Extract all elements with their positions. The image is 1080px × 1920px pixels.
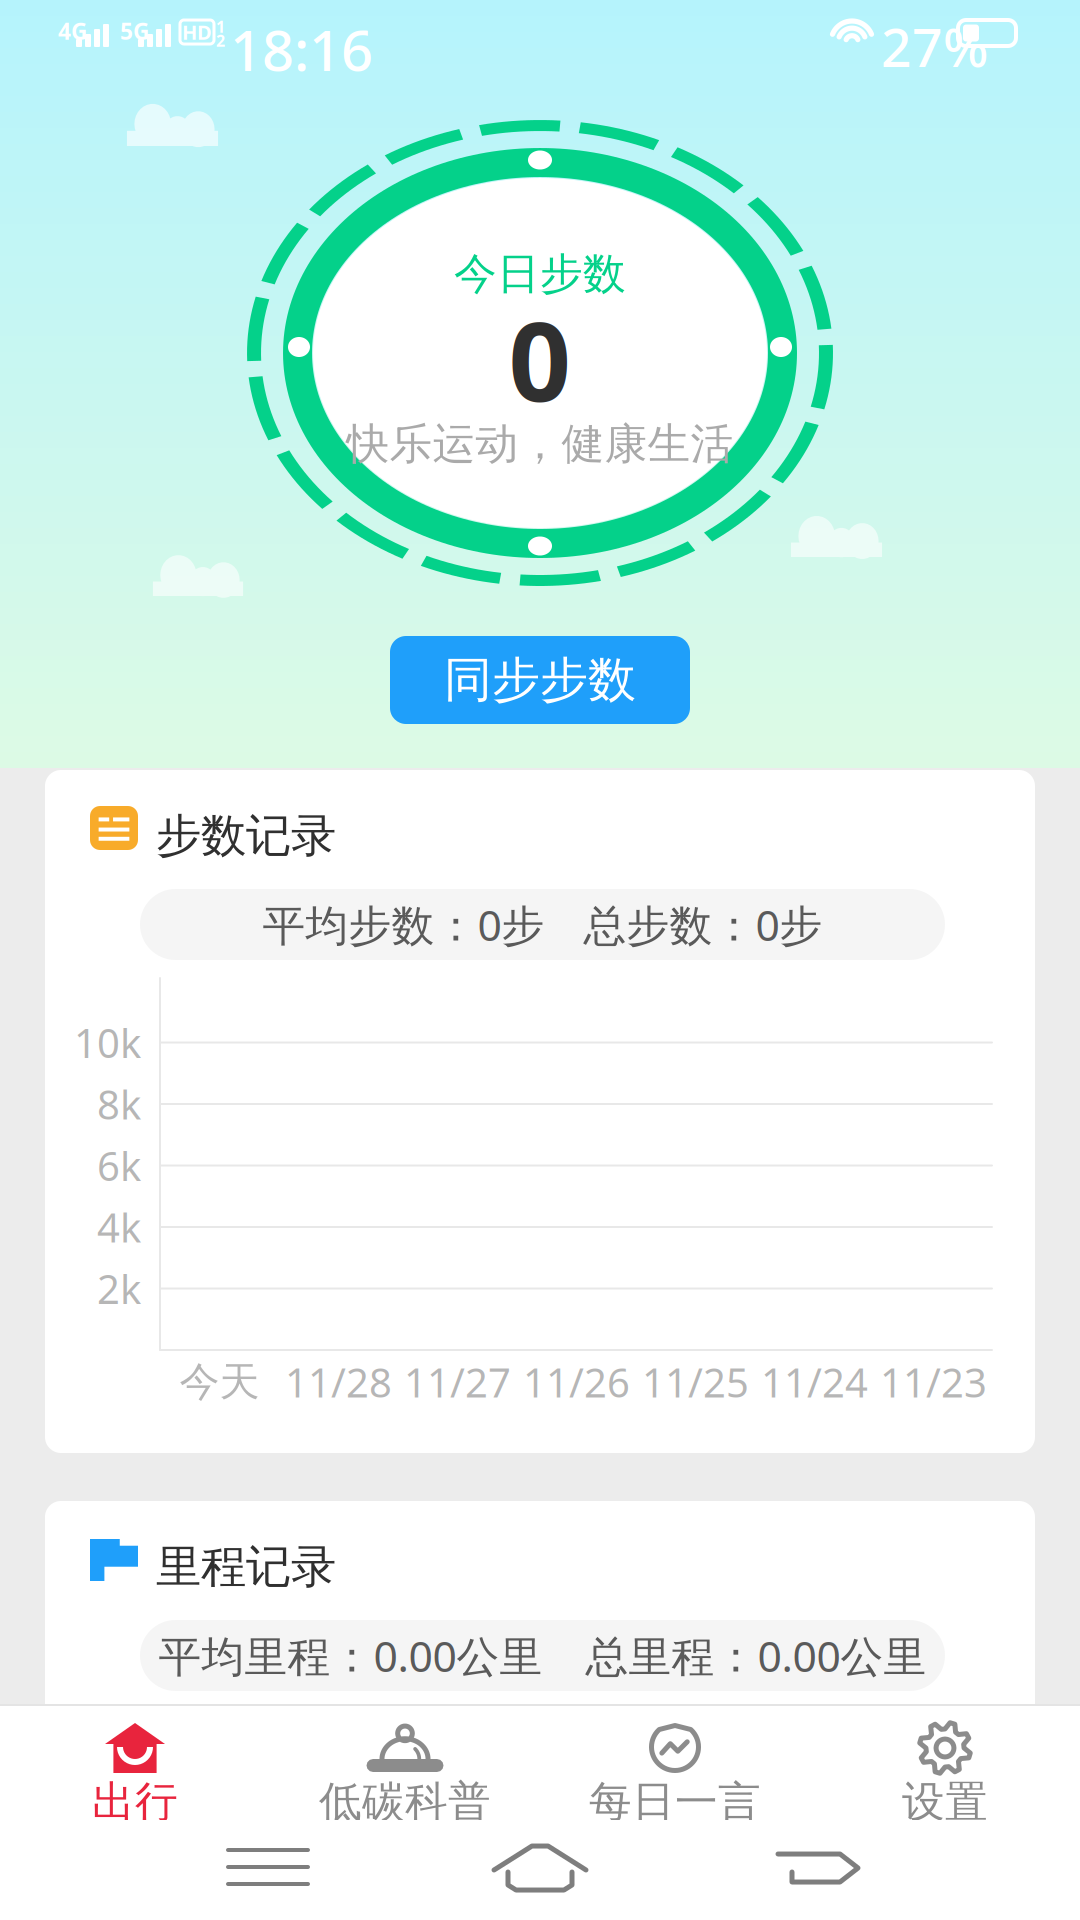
staticText: 平均步数：0步 总步数：0步 [262, 896, 822, 953]
staticText: 5G [120, 16, 149, 46]
staticText: 10k [74, 1016, 141, 1069]
staticText: 18:16 [230, 12, 373, 86]
staticText: 11/28 [285, 1355, 392, 1408]
staticText: 1 [216, 16, 225, 37]
staticText: 平均里程：0.00公里 总里程：0.00公里 [158, 1627, 926, 1684]
staticText: 快乐运动，健康生活 [346, 418, 733, 470]
staticText: 4G [58, 16, 87, 46]
staticText: 11/27 [404, 1355, 511, 1408]
staticText: 今天 [179, 1357, 259, 1406]
staticText: 8k [97, 1077, 141, 1130]
staticText: 今日步数 [454, 248, 626, 300]
staticText: 11/23 [880, 1355, 987, 1408]
staticText: 里程记录 [156, 1539, 336, 1595]
staticText: 27% [881, 11, 988, 82]
staticText: 同步步数 [444, 650, 636, 709]
button[interactable]: 每日一言 [540, 1704, 810, 1830]
staticText: 设置 [902, 1776, 988, 1828]
staticText: 11/25 [642, 1355, 749, 1408]
staticText: 11/24 [761, 1355, 868, 1408]
button[interactable]: 低碳科普 [270, 1704, 540, 1830]
staticText: 11/26 [523, 1355, 630, 1408]
staticText: 出行 [92, 1776, 178, 1828]
staticText: 低碳科普 [319, 1776, 491, 1828]
staticText: 2k [97, 1262, 141, 1315]
staticText: 4k [97, 1200, 141, 1253]
staticText: 6k [97, 1139, 141, 1192]
button[interactable]: 同步步数 [390, 636, 690, 724]
staticText: 步数记录 [156, 808, 336, 864]
button[interactable]: Home [480, 1832, 600, 1902]
staticText: HD [182, 19, 212, 45]
button[interactable]: 设置 [810, 1704, 1080, 1830]
button[interactable]: Recent apps [210, 1832, 330, 1902]
button[interactable]: 出行 [0, 1704, 270, 1830]
staticText: 每日一言 [589, 1776, 761, 1828]
staticText: 0 [508, 286, 571, 432]
staticText: 2 [216, 30, 225, 51]
button[interactable]: Back [762, 1832, 882, 1902]
